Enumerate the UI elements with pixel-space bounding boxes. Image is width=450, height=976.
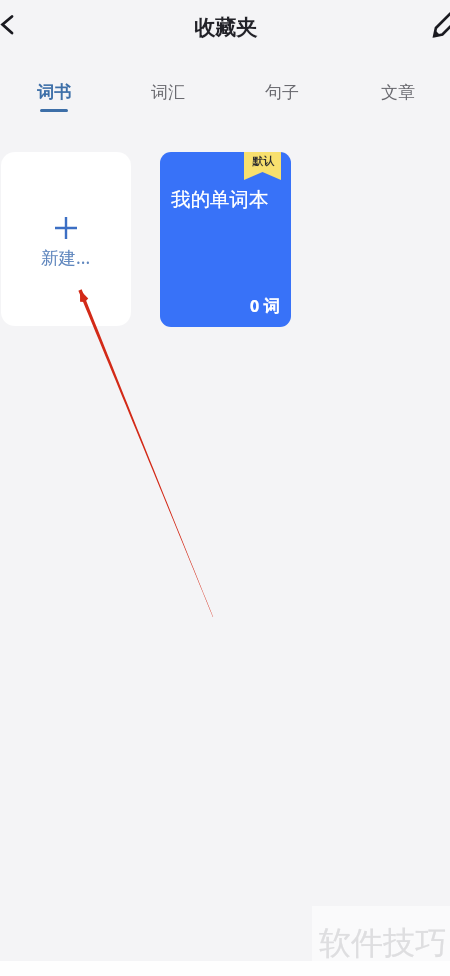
staticText: 词汇 bbox=[151, 82, 185, 103]
staticText: 软件技巧 bbox=[319, 923, 447, 963]
staticText: 收藏夹 bbox=[194, 15, 257, 41]
staticText: 文章 bbox=[381, 82, 415, 103]
button[interactable]: 我的单词本 bbox=[160, 152, 291, 327]
button[interactable]: 句子 bbox=[242, 56, 322, 112]
staticText: 默认 bbox=[252, 154, 274, 168]
button[interactable]: 文章 bbox=[358, 56, 438, 112]
button[interactable]: 词书 bbox=[14, 56, 94, 112]
button[interactable]: Edit bbox=[427, 6, 450, 50]
button[interactable]: 新建... bbox=[1, 152, 131, 326]
staticText: 新建... bbox=[41, 245, 91, 269]
staticText: 我的单词本 bbox=[171, 187, 269, 212]
staticText: 句子 bbox=[265, 82, 299, 103]
staticText: 词书 bbox=[37, 82, 71, 103]
staticText: 0 词 bbox=[250, 295, 280, 317]
button[interactable]: 词汇 bbox=[128, 56, 208, 112]
button[interactable]: Back bbox=[0, 8, 28, 44]
